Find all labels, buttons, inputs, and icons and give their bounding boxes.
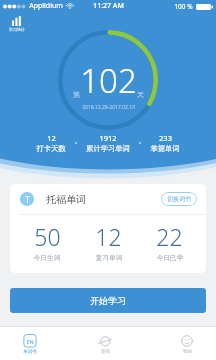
button[interactable]: 学习统计: [6, 15, 28, 33]
staticText: 我的: [183, 349, 192, 355]
staticText: 12: [47, 133, 56, 143]
staticText: 2016.12.26-2017.02.13: [82, 104, 135, 111]
staticText: 233: [159, 133, 172, 143]
staticText: 1912: [99, 133, 117, 143]
staticText: 今日已学: [156, 253, 184, 262]
staticText: 今日生词: [33, 253, 61, 262]
staticText: 11:27 AM: [93, 1, 124, 11]
staticText: 102: [80, 58, 137, 103]
button[interactable]: 我的: [166, 332, 208, 355]
button[interactable]: 切换词书: [161, 192, 197, 206]
staticText: 50: [34, 221, 61, 252]
staticText: 开始学习: [90, 295, 126, 306]
staticText: 托福单词: [46, 193, 86, 206]
staticText: 100 %: [174, 2, 193, 11]
staticText: 单词书: [23, 349, 37, 355]
staticText: 打卡天数: [36, 144, 66, 153]
staticText: Applidium: [29, 1, 63, 11]
button[interactable]: EN: [9, 332, 51, 355]
staticText: EN: [26, 338, 34, 345]
staticText: 12: [95, 221, 122, 252]
button[interactable]: 开始学习: [10, 288, 206, 313]
staticText: 复习单词: [95, 253, 123, 262]
staticText: 22: [156, 221, 183, 252]
staticText: 学习统计: [9, 27, 25, 32]
staticText: 掌握单词: [150, 144, 180, 153]
staticText: 切换词书: [167, 195, 191, 203]
staticText: T: [25, 194, 30, 205]
staticText: 发现: [101, 349, 110, 355]
staticText: 第: [73, 90, 80, 99]
staticText: 累计学习单词: [86, 144, 130, 153]
staticText: 天: [137, 90, 144, 99]
button[interactable]: 发现: [84, 332, 126, 355]
